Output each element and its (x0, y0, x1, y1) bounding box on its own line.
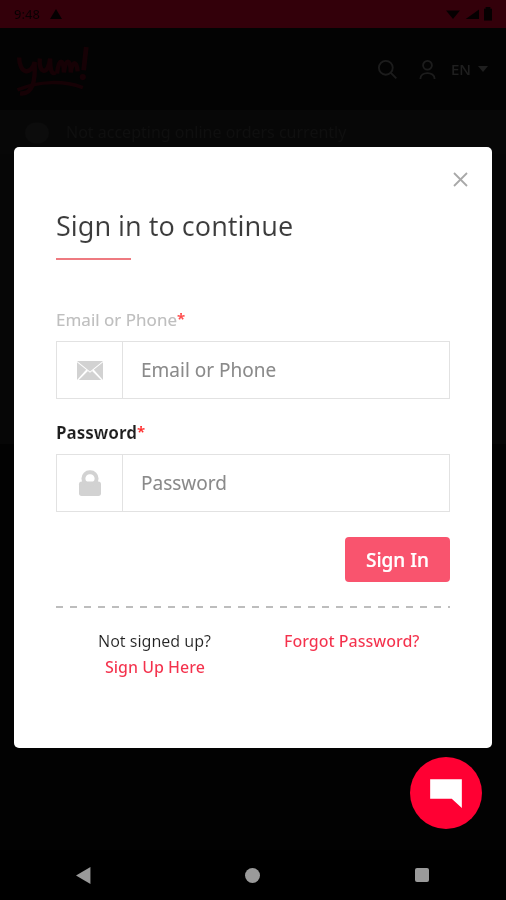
staticText: * (137, 421, 146, 441)
button[interactable]: Close (442, 161, 478, 197)
button[interactable]: Home (168, 850, 337, 900)
button[interactable]: Forgot Password? (253, 630, 450, 652)
staticText: Email or Phone (56, 308, 177, 331)
button[interactable]: Recent apps (337, 850, 506, 900)
button[interactable]: Back (0, 850, 168, 900)
button[interactable]: Account (407, 49, 447, 89)
staticText: Sign in to continue (56, 207, 294, 244)
button[interactable]: Sign In (345, 537, 450, 582)
staticText: Password (56, 421, 137, 444)
button[interactable]: Sign Up Here (105, 656, 205, 678)
staticText: 9:48 (14, 5, 40, 23)
button[interactable]: EN (447, 59, 492, 79)
staticText: Sign Up Here (105, 656, 205, 678)
button[interactable]: Password (56, 454, 450, 512)
staticText: Email or Phone (141, 357, 277, 383)
staticText: EN (451, 59, 471, 79)
staticText: * (177, 308, 186, 328)
staticText: Not signed up? (98, 630, 211, 652)
button[interactable]: Chat (410, 757, 482, 829)
staticText: Password (141, 470, 227, 496)
button[interactable]: Search (367, 49, 407, 89)
staticText: Forgot Password? (284, 630, 420, 652)
button[interactable]: Email or Phone (56, 341, 450, 399)
staticText: Sign In (366, 547, 429, 573)
